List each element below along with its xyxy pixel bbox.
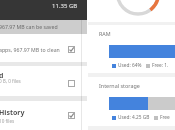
staticText: Used: 4.25 GB	[118, 114, 150, 121]
staticText: 967.97 MB can be saved	[0, 23, 58, 30]
button[interactable]: d	[0, 66, 87, 96]
button[interactable]: Select item	[68, 80, 75, 87]
staticText: d	[0, 71, 4, 81]
staticText: 0 B, 0 files	[0, 78, 21, 84]
staticText: Used: 64%	[118, 62, 142, 69]
button[interactable]: Select item	[68, 112, 75, 119]
button[interactable]: apps, 967.97 MB to clean	[0, 34, 87, 62]
button[interactable]: Select item	[68, 46, 75, 53]
staticText: Free	[160, 114, 170, 121]
staticText: Internal storage	[99, 82, 140, 89]
staticText: History	[0, 108, 25, 118]
staticText: 11.35 GB	[52, 2, 78, 10]
staticText: RAM	[99, 30, 111, 37]
staticText: Free: 1.	[152, 62, 169, 69]
button[interactable]: History	[0, 101, 87, 130]
staticText: apps, 967.97 MB to clean	[0, 46, 60, 53]
staticText: 10 files	[0, 118, 15, 124]
